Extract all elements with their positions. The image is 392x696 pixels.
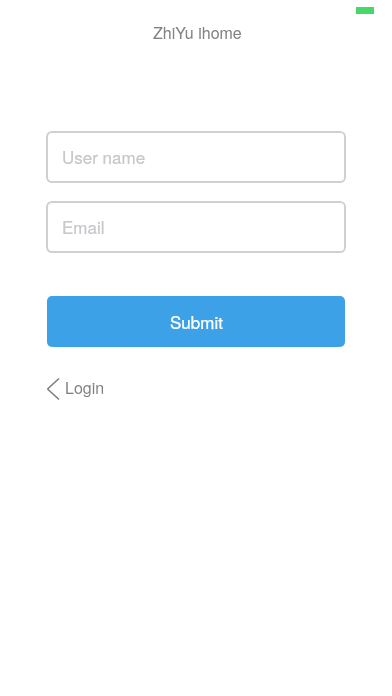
button[interactable]: Submit bbox=[47, 296, 345, 347]
button[interactable]: Back bbox=[44, 375, 105, 403]
staticText: User name bbox=[62, 144, 146, 168]
staticText: Login bbox=[65, 376, 105, 399]
other: Back bbox=[44, 376, 62, 402]
staticText: ZhiYu ihome bbox=[153, 21, 242, 43]
button[interactable]: User name bbox=[46, 131, 346, 183]
button[interactable]: Email bbox=[46, 201, 346, 253]
staticText: Submit bbox=[170, 309, 223, 333]
staticText: Email bbox=[62, 214, 105, 238]
